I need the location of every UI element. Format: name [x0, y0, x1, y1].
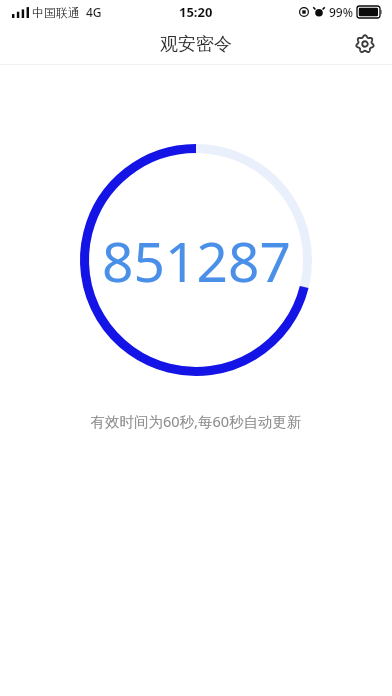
staticText: 4G [86, 4, 102, 20]
staticText: 观安密令 [160, 33, 232, 56]
staticText: 851287 [102, 223, 291, 298]
staticText: 有效时间为60秒,每60秒自动更新 [90, 411, 302, 431]
staticText: 99% [329, 4, 353, 20]
button[interactable]: Settings [349, 28, 381, 60]
staticText: 15:20 [179, 3, 213, 21]
staticText: 中国联通 [32, 5, 80, 20]
